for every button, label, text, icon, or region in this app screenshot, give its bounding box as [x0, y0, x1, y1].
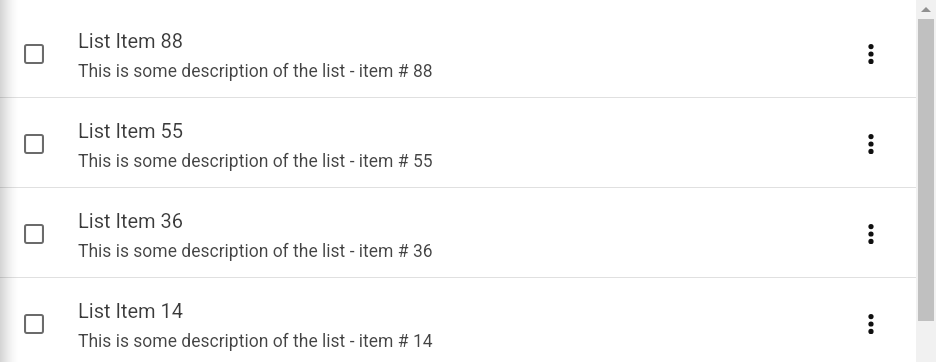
button[interactable]: More options for List Item 36 [847, 210, 895, 258]
button[interactable]: More options for List Item 88 [847, 30, 895, 78]
button[interactable]: More options for List Item 14 [847, 300, 895, 348]
button[interactable]: Select List Item 36 [17, 217, 51, 251]
staticText: List Item 14 [78, 299, 184, 322]
staticText: List Item 88 [78, 29, 184, 52]
staticText: List Item 36 [78, 209, 184, 232]
staticText: This is some description of the list - i… [78, 331, 433, 352]
button[interactable]: More options for List Item 55 [847, 120, 895, 168]
button[interactable]: Scroll up [916, 0, 936, 19]
button[interactable]: Select List Item 14 [0, 278, 936, 362]
button[interactable]: Select List Item 55 [17, 127, 51, 161]
button[interactable]: Select List Item 55 [0, 98, 936, 187]
button[interactable]: Select List Item 88 [17, 37, 51, 71]
staticText: List Item 55 [78, 119, 184, 142]
staticText: This is some description of the list - i… [78, 61, 433, 82]
button[interactable]: Select List Item 36 [0, 188, 936, 277]
staticText: This is some description of the list - i… [78, 241, 433, 262]
button[interactable]: Select List Item 14 [17, 307, 51, 341]
staticText: This is some description of the list - i… [78, 151, 433, 172]
button[interactable]: Select List Item 88 [0, 8, 936, 97]
